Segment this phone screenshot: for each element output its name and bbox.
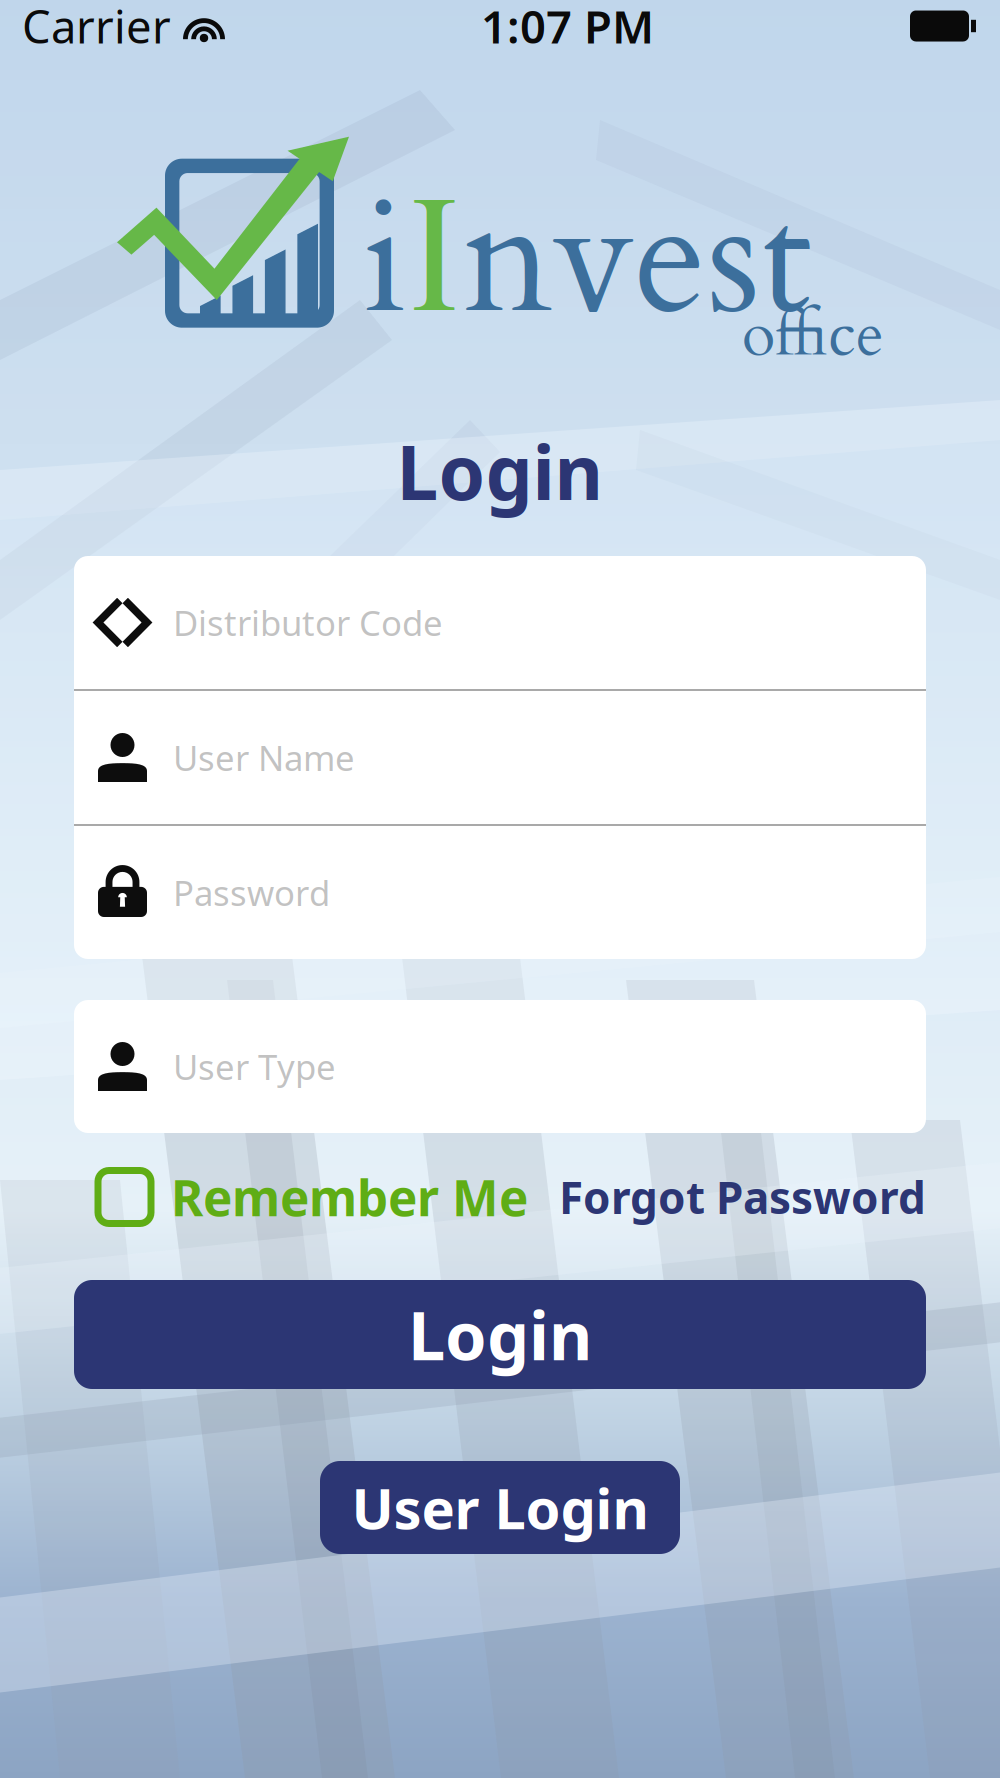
button[interactable]: User Type [74, 1000, 926, 1133]
staticText: User Type [173, 1043, 336, 1089]
staticText: Password [173, 869, 330, 915]
staticText: Distributor Code [173, 599, 443, 645]
staticText: i [362, 152, 407, 368]
button[interactable]: User Login [320, 1461, 680, 1554]
staticText: 1:07 PM [481, 0, 654, 56]
button[interactable]: Forgot Password [559, 1166, 926, 1228]
staticText: Login [408, 1290, 592, 1379]
button[interactable]: Remember Me [98, 1166, 528, 1228]
staticText: I [407, 152, 462, 368]
staticText: nvest [462, 152, 812, 368]
staticText: office [742, 294, 884, 377]
staticText: Forgot Password [559, 1168, 926, 1226]
staticText: Carrier [22, 0, 171, 56]
button[interactable]: Login [74, 1280, 926, 1389]
staticText: User Name [173, 734, 355, 780]
staticText: Login [396, 421, 603, 521]
button[interactable]: User Name [74, 691, 926, 824]
staticText: Remember Me [171, 1164, 528, 1230]
button[interactable]: Password [74, 826, 926, 959]
staticText: User Login [351, 1470, 648, 1545]
button[interactable]: Distributor Code [74, 556, 926, 689]
